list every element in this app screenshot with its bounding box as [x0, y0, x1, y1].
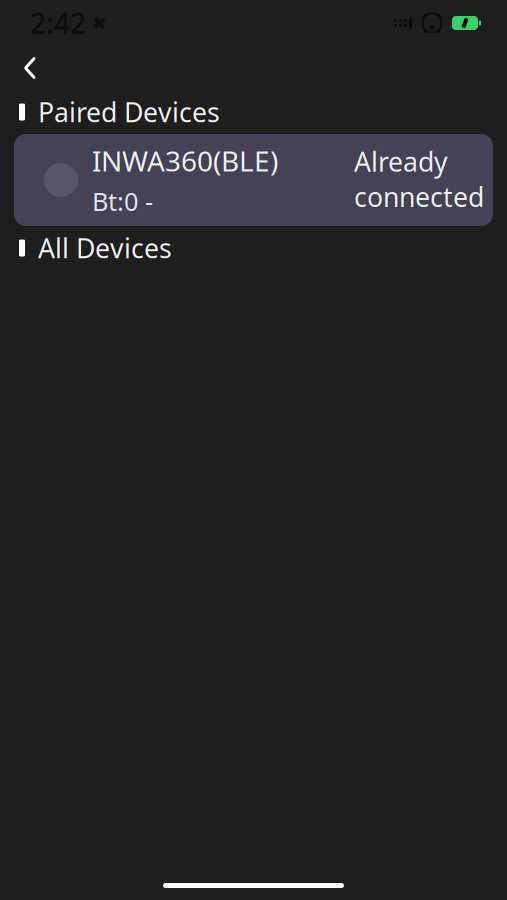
staticText: Already connected	[354, 144, 484, 214]
staticText: INWA360(BLE)	[92, 142, 278, 179]
staticText: All Devices	[38, 230, 172, 266]
staticText: 2:42	[30, 4, 86, 42]
staticText: Paired Devices	[38, 94, 220, 130]
button[interactable]: INWA360(BLE)	[0, 134, 507, 226]
button[interactable]: Back	[8, 46, 52, 90]
staticText: Bt:0 -	[92, 184, 153, 218]
